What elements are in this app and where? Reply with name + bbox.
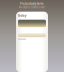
staticText: Productivity Suite [20, 2, 44, 5]
staticText: Today [18, 14, 27, 17]
staticText: Analytics Dashboard [19, 5, 45, 9]
